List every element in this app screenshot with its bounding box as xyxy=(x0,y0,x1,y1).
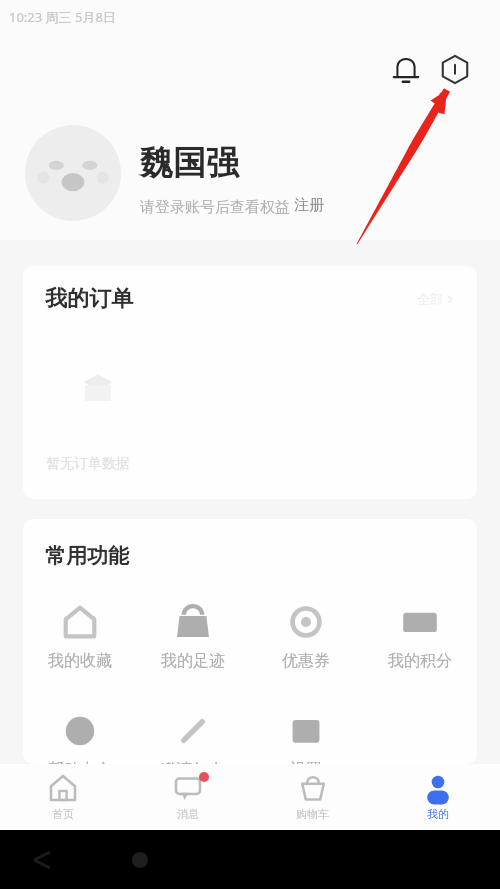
staticText: 我的积分 xyxy=(388,651,452,671)
button[interactable]: Notifications xyxy=(384,47,428,91)
staticText: 我的 xyxy=(427,807,449,821)
staticText: 暂无订单数据 xyxy=(46,455,130,473)
button[interactable]: 帮助中心 xyxy=(23,710,136,764)
button[interactable]: Back xyxy=(30,848,54,872)
staticText: 优惠券 xyxy=(282,651,330,671)
staticText: 全部 xyxy=(417,291,443,307)
staticText: 购物车 xyxy=(296,807,329,821)
button[interactable]: 我的收藏 xyxy=(23,601,136,671)
button[interactable]: 邀请好友 xyxy=(136,710,249,764)
staticText: 帮助中心 xyxy=(48,760,112,764)
button[interactable]: Home xyxy=(128,848,152,872)
button[interactable]: 魏国强 xyxy=(0,106,500,240)
button[interactable]: 购物车 xyxy=(250,764,375,830)
button[interactable]: 优惠券 xyxy=(249,601,363,671)
button[interactable]: 首页 xyxy=(0,764,125,830)
staticText: 魏国强 xyxy=(140,142,239,184)
button[interactable]: 消息 xyxy=(125,764,250,830)
staticText: 首页 xyxy=(52,807,74,821)
staticText: 我的订单 xyxy=(45,285,133,313)
staticText: 请登录账号后查看权益 xyxy=(140,196,294,216)
staticText: 消息 xyxy=(177,807,199,821)
staticText: 常用功能 xyxy=(45,543,129,569)
staticText: 我的收藏 xyxy=(48,651,112,671)
button[interactable]: Security xyxy=(433,47,477,91)
button[interactable]: 我的积分 xyxy=(363,601,477,671)
staticText: 注册 xyxy=(294,196,324,215)
button[interactable]: 我的订单 xyxy=(45,266,455,332)
button[interactable]: 我的 xyxy=(375,764,500,830)
staticText: 我的足迹 xyxy=(161,651,225,671)
button[interactable]: 我的足迹 xyxy=(136,601,249,671)
staticText: 邀请好友 xyxy=(161,760,225,764)
button[interactable]: 设置 xyxy=(249,710,363,764)
staticText: 设置 xyxy=(290,760,322,764)
staticText: 10:23 周三 5月8日 xyxy=(9,8,116,26)
